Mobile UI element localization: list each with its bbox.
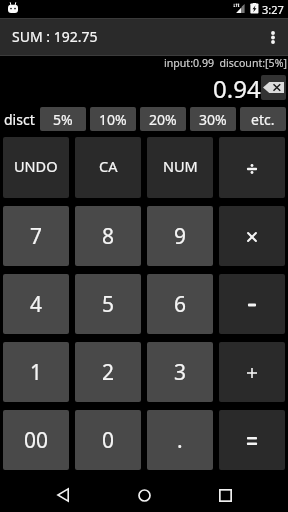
staticText: 5% bbox=[53, 110, 73, 129]
button[interactable]: 8 bbox=[75, 206, 141, 266]
staticText: 1 bbox=[30, 358, 43, 387]
button[interactable]: 7 bbox=[3, 206, 69, 266]
button[interactable]: . bbox=[147, 410, 213, 470]
staticText: 5 bbox=[102, 290, 115, 319]
staticText: 3 bbox=[174, 358, 187, 387]
button[interactable]: 6 bbox=[147, 274, 213, 334]
staticText: 2 bbox=[102, 358, 115, 387]
button[interactable]: 1 bbox=[3, 342, 69, 402]
staticText: input:0.99 discount:[5%] bbox=[164, 56, 287, 70]
button[interactable]: CA bbox=[75, 137, 141, 198]
staticText: 30% bbox=[199, 110, 227, 129]
staticText: 6 bbox=[174, 290, 187, 319]
button[interactable]: 0 bbox=[75, 410, 141, 470]
button[interactable]: Divide bbox=[219, 137, 285, 198]
staticText: 3:27 bbox=[262, 2, 284, 17]
staticText: 4 bbox=[30, 290, 43, 319]
button[interactable]: 4 bbox=[3, 274, 69, 334]
button[interactable]: Subtract bbox=[219, 274, 285, 334]
button[interactable]: NUM bbox=[147, 137, 213, 198]
button[interactable]: 5 bbox=[75, 274, 141, 334]
staticText: 9 bbox=[174, 222, 187, 251]
button[interactable]: 9 bbox=[147, 206, 213, 266]
button[interactable]: 3 bbox=[147, 342, 213, 402]
button[interactable]: Equals bbox=[219, 410, 285, 470]
button[interactable]: More options bbox=[256, 18, 288, 56]
staticText: 0 bbox=[102, 426, 115, 455]
button[interactable]: Back bbox=[39, 474, 87, 512]
staticText: 8 bbox=[102, 222, 115, 251]
staticText: 10% bbox=[99, 110, 127, 129]
staticText: . bbox=[177, 426, 183, 455]
staticText: 0.94 bbox=[213, 72, 261, 105]
staticText: etc. bbox=[251, 110, 275, 129]
button[interactable]: Add bbox=[219, 342, 285, 402]
button[interactable]: 20% bbox=[140, 107, 186, 131]
button[interactable]: Home bbox=[120, 474, 168, 512]
button[interactable]: 5% bbox=[40, 107, 86, 131]
staticText: 20% bbox=[149, 110, 177, 129]
button[interactable]: 00 bbox=[3, 410, 69, 470]
button[interactable]: etc. bbox=[240, 107, 286, 131]
staticText: 7 bbox=[30, 222, 43, 251]
staticText: 00 bbox=[24, 426, 49, 455]
staticText: SUM : 192.75 bbox=[12, 27, 98, 46]
button[interactable]: Backspace bbox=[261, 75, 286, 100]
button[interactable]: 2 bbox=[75, 342, 141, 402]
button[interactable]: UNDO bbox=[3, 137, 69, 198]
staticText: CA bbox=[99, 156, 118, 176]
button[interactable]: Multiply bbox=[219, 206, 285, 266]
button[interactable]: 10% bbox=[90, 107, 136, 131]
staticText: NUM bbox=[163, 156, 198, 176]
staticText: disct bbox=[4, 110, 35, 129]
button[interactable]: 30% bbox=[190, 107, 236, 131]
button[interactable]: Recents bbox=[201, 474, 249, 512]
staticText: UNDO bbox=[14, 156, 58, 176]
